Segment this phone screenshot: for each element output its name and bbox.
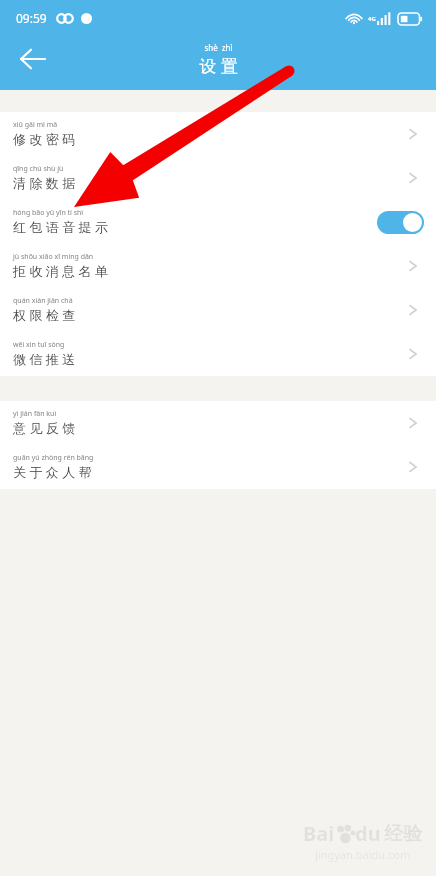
staticText: quán xiàn jiǎn chá — [13, 296, 73, 306]
staticText: yì jiàn fǎn kuì — [13, 409, 57, 419]
staticText: jingyan.baidu.com — [315, 847, 411, 862]
staticText: wēi xìn tuī sòng — [13, 340, 65, 350]
button[interactable]: xiū gǎi mì mǎ — [0, 112, 436, 156]
staticText: 拒 收 消 息 名 单 — [13, 262, 108, 280]
button[interactable]: jù shōu xiāo xī míng dān — [0, 244, 436, 288]
staticText: 4G — [368, 15, 376, 23]
button[interactable]: quán xiàn jiǎn chá — [0, 288, 436, 332]
button[interactable]: hóng bāo yǔ yīn tí shì — [0, 200, 436, 244]
staticText: 权 限 检 查 — [13, 306, 76, 324]
staticText: jù shōu xiāo xī míng dān — [13, 252, 94, 262]
staticText: 09:59 — [16, 10, 47, 26]
staticText: qīng chú shù jù — [13, 164, 64, 174]
button[interactable]: Back — [8, 35, 56, 83]
staticText: 经验 — [384, 822, 422, 846]
staticText: 设 置 — [199, 54, 238, 77]
button[interactable]: guān yú zhòng rén bāng — [0, 445, 436, 489]
button[interactable]: wēi xìn tuī sòng — [0, 332, 436, 376]
button[interactable]: yì jiàn fǎn kuì — [0, 401, 436, 445]
staticText: hóng bāo yǔ yīn tí shì — [13, 208, 84, 218]
button[interactable]: qīng chú shù jù — [0, 156, 436, 200]
staticText: 清 除 数 据 — [13, 174, 76, 192]
staticText: 关 于 众 人 帮 — [13, 463, 92, 481]
staticText: Bai — [303, 820, 335, 847]
staticText: du — [355, 820, 381, 847]
staticText: 修 改 密 码 — [13, 130, 76, 148]
staticText: 意 见 反 馈 — [13, 419, 76, 437]
button[interactable]: Voice alert toggle — [377, 211, 424, 234]
staticText: xiū gǎi mì mǎ — [13, 120, 58, 130]
staticText: 微 信 推 送 — [13, 350, 76, 368]
staticText: shè zhì — [204, 42, 233, 53]
staticText: guān yú zhòng rén bāng — [13, 453, 94, 463]
staticText: 红 包 语 音 提 示 — [13, 218, 108, 236]
